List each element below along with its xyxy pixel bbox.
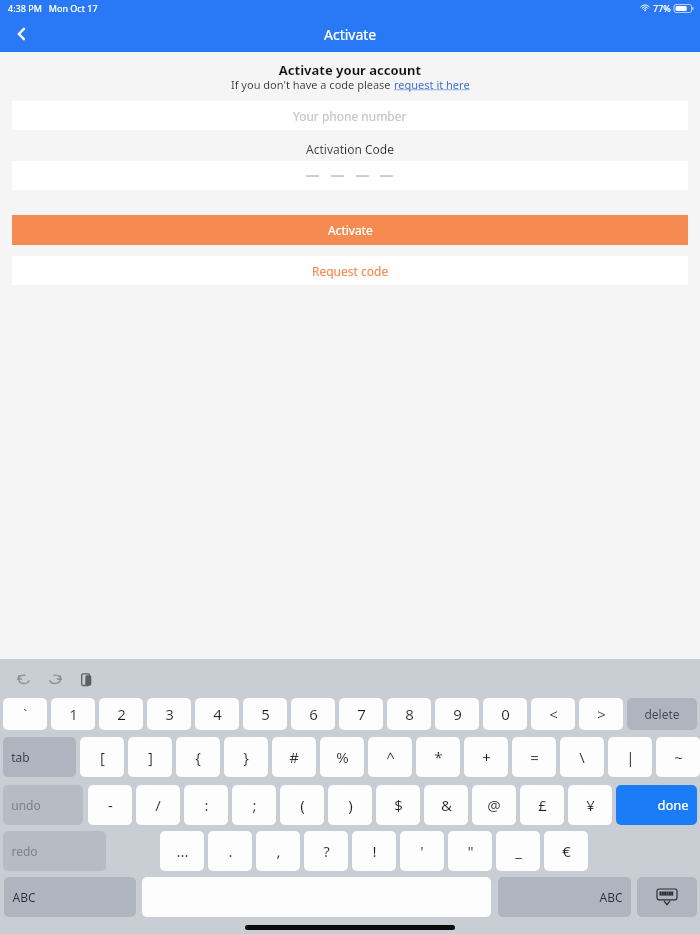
button[interactable]: 8 [387,698,431,730]
button[interactable]: 6 [291,698,335,730]
button[interactable]: : [184,785,228,825]
button[interactable]: Activate [12,215,688,245]
button[interactable]: delete [627,698,697,730]
button[interactable]: ? [304,831,348,871]
button[interactable]: [ [80,737,124,777]
button[interactable]: ; [232,785,276,825]
staticText: ^ [386,747,395,767]
staticText: _ [515,841,522,861]
button[interactable]: ¥ [568,785,612,825]
button[interactable]: % [320,737,364,777]
button[interactable]: ~ [656,737,700,777]
staticText: , [276,841,281,861]
button[interactable]: & [424,785,468,825]
staticText: 6 [309,704,318,724]
staticText: + [482,747,491,767]
staticText: delete [644,706,680,722]
button[interactable]: ! [352,831,396,871]
button[interactable]: > [579,698,623,730]
staticText: ] [148,747,153,767]
staticText: done [657,796,689,814]
staticText: 5 [261,704,270,724]
staticText: ! [372,841,377,861]
button[interactable]: 7 [339,698,383,730]
button[interactable]: * [416,737,460,777]
staticText: ; [252,795,257,815]
button[interactable] [12,161,688,190]
button[interactable]: 4 [195,698,239,730]
button[interactable]: _ [496,831,540,871]
button[interactable]: Redo [41,665,69,693]
staticText: request it here [394,77,470,92]
staticText: ABC [599,889,623,905]
button[interactable]: { [176,737,220,777]
staticText: Your phone number [293,108,407,124]
button[interactable]: + [464,737,508,777]
staticText: ` [23,705,27,723]
staticText: ... [176,841,189,861]
button[interactable]: 5 [243,698,287,730]
staticText: £ [538,795,547,815]
button[interactable]: ^ [368,737,412,777]
staticText: - [108,795,113,815]
button[interactable]: 0 [483,698,527,730]
staticText: " [467,841,474,861]
button[interactable]: tab [3,737,76,777]
staticText: [ [100,747,105,767]
button[interactable]: # [272,737,316,777]
button[interactable]: = [512,737,556,777]
button[interactable]: request it here [394,77,470,92]
button[interactable]: Back [0,16,44,52]
staticText: | [626,747,635,767]
button[interactable]: ... [160,831,204,871]
button[interactable]: | [608,737,652,777]
button[interactable]: , [256,831,300,871]
button[interactable]: Undo [10,665,38,693]
staticText: < [549,704,558,724]
button[interactable]: " [448,831,492,871]
staticText: Activate your account [0,61,700,79]
button[interactable]: < [531,698,575,730]
staticText: ' [420,841,424,861]
staticText: 4 [213,704,222,724]
button[interactable]: 9 [435,698,479,730]
staticText: % [336,747,349,767]
button[interactable]: ABC [498,877,631,917]
staticText: 1 [69,704,78,724]
button[interactable]: 3 [147,698,191,730]
staticText: ¥ [586,795,595,815]
button[interactable]: ( [280,785,324,825]
staticText: 0 [501,704,510,724]
button[interactable]: ] [128,737,172,777]
staticText: undo [11,797,41,813]
button[interactable]: ` [3,698,47,730]
button[interactable]: @ [472,785,516,825]
button[interactable]: Paste [72,665,100,693]
button[interactable]: - [88,785,132,825]
button[interactable]: / [136,785,180,825]
button[interactable]: undo [3,785,83,825]
button[interactable]: Your phone number [12,101,688,130]
button[interactable]: 1 [51,698,95,730]
button[interactable]: ' [400,831,444,871]
button[interactable]: done [616,785,697,825]
button[interactable]: Hide keyboard [637,877,697,917]
staticText: } [243,747,249,767]
staticText: / [155,795,161,815]
staticText: 77% [653,2,671,14]
staticText: 7 [357,704,366,724]
button[interactable]: . [208,831,252,871]
button[interactable]: ) [328,785,372,825]
button[interactable]: £ [520,785,564,825]
button[interactable]: $ [376,785,420,825]
button[interactable]: Request code [12,256,688,285]
staticText: ? [323,841,330,861]
button[interactable]: redo [3,831,106,871]
button[interactable]: ABC [4,877,136,917]
button[interactable]: € [544,831,588,871]
button[interactable]: } [224,737,268,777]
button[interactable]: 2 [99,698,143,730]
button[interactable]: \ [560,737,604,777]
staticText: @ [487,795,501,815]
